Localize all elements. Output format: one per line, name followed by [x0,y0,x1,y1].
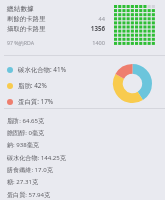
button[interactable]: 膽固醇: 0毫克 [7,128,165,136]
staticText: 蛋白質: 17% [18,97,54,106]
staticText: 碳水化合物: 41% [18,65,66,74]
button[interactable]: 脂肪: 64.65克 [7,116,165,124]
staticText: 總結數據 [7,5,34,13]
button[interactable]: 脂肪: 42% [7,81,47,90]
button[interactable]: 蛋白質: 57.94克 [7,190,165,198]
button[interactable]: 蛋白質: 17% [7,97,54,106]
staticText: 44 [65,15,105,23]
staticText: 剩餘的卡路里 [7,15,46,23]
button[interactable]: 碳水化合物: 41% [7,65,66,74]
staticText: 1400 [65,39,105,47]
button[interactable]: 糖: 27.31克 [7,177,165,185]
staticText: 脂肪: 42% [18,81,47,90]
button[interactable]: 碳水化合物: 144.25克 [7,153,165,161]
staticText: 97 %的RDA [7,39,35,46]
button[interactable]: 鈉: 938毫克 [7,140,165,148]
staticText: 攝取的卡路里 [7,25,46,33]
staticText: 1356 [65,24,105,32]
button[interactable]: 膳食纖維: 17.0克 [7,165,165,173]
